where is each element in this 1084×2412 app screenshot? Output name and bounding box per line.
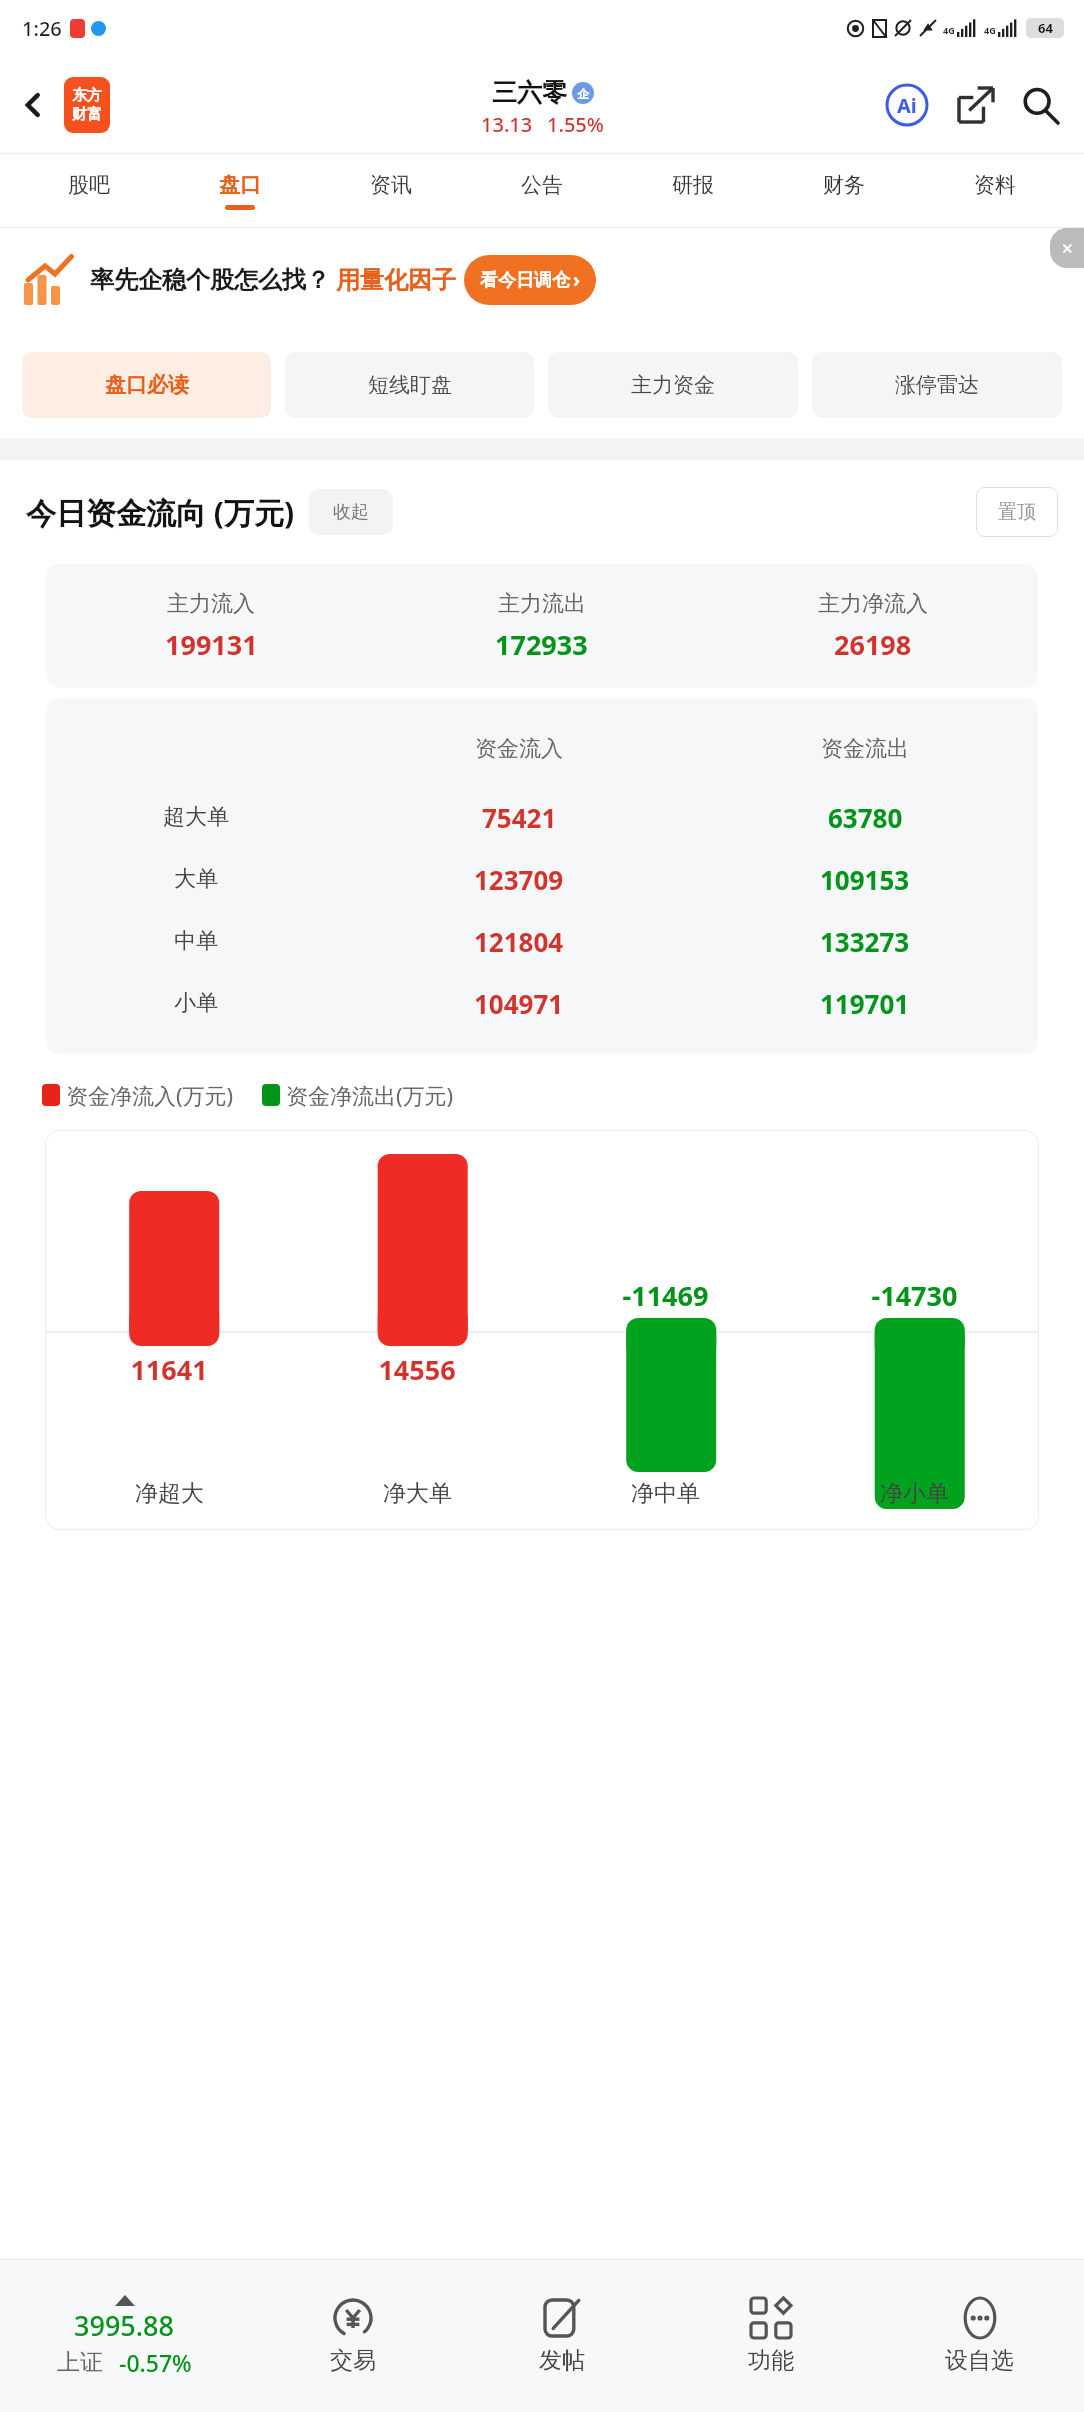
staticText: 功能 <box>748 2346 794 2375</box>
staticText: 4G <box>943 24 955 36</box>
button[interactable]: 主力资金 <box>548 352 798 418</box>
button[interactable]: Search <box>1018 83 1062 127</box>
staticText: 主力流出 <box>498 590 586 618</box>
staticText: 主力净流入 <box>818 590 928 618</box>
staticText: 资料 <box>974 172 1016 198</box>
staticText: 收起 <box>333 501 369 524</box>
button[interactable]: 股吧 <box>14 154 164 228</box>
staticText: 14556 <box>293 1351 541 1388</box>
button[interactable]: East Money <box>64 77 110 133</box>
staticText: 大单 <box>174 865 218 893</box>
button[interactable]: 设自选 <box>875 2260 1084 2412</box>
staticText: 超大单 <box>163 803 229 831</box>
button[interactable]: 盘口必读 <box>22 352 271 418</box>
staticText: -11469 <box>541 1277 790 1314</box>
button[interactable]: 财务 <box>768 154 919 228</box>
button[interactable]: 资料 <box>919 154 1070 228</box>
staticText: 资金净流出(万元) <box>286 1080 454 1110</box>
staticText: 1:26 <box>22 15 62 42</box>
staticText: 研报 <box>672 172 714 198</box>
button[interactable]: Close ad <box>1050 228 1084 268</box>
staticText: 11641 <box>45 1351 293 1388</box>
staticText: 123709 <box>474 862 564 897</box>
staticText: 看今日调仓 <box>480 269 570 292</box>
staticText: 64 <box>1038 19 1053 37</box>
staticText: 财务 <box>823 172 865 198</box>
button[interactable]: 资讯 <box>315 154 466 228</box>
staticText: 设自选 <box>945 2346 1014 2375</box>
staticText: 中单 <box>174 927 218 955</box>
staticText: -0.57% <box>119 2347 192 2378</box>
button[interactable]: 看今日调仓 <box>480 255 580 305</box>
button[interactable]: 收起 <box>309 489 393 535</box>
staticText: 置顶 <box>998 500 1036 524</box>
staticText: 净中单 <box>631 1479 700 1508</box>
staticText: 资金流出 <box>821 735 909 763</box>
staticText: 用量化因子 <box>336 265 456 295</box>
staticText: 26198 <box>834 626 912 663</box>
button[interactable]: 公告 <box>466 154 617 228</box>
staticText: 1.55% <box>547 111 604 138</box>
button[interactable]: 短线盯盘 <box>285 352 534 418</box>
button[interactable]: 率先企稳个股怎么找？ <box>24 228 1070 332</box>
staticText: 盘口 <box>219 172 261 198</box>
button[interactable]: 研报 <box>617 154 768 228</box>
staticText: 199131 <box>165 626 258 663</box>
staticText: 交易 <box>330 2346 376 2375</box>
staticText: 109153 <box>820 862 910 897</box>
button[interactable]: 3995.88 <box>0 2260 248 2412</box>
staticText: 率先企稳个股怎么找？ <box>90 265 330 295</box>
staticText: 63780 <box>828 800 903 835</box>
staticText: 净小单 <box>880 1479 949 1508</box>
staticText: 短线盯盘 <box>368 372 452 398</box>
staticText: 3995.88 <box>74 2307 175 2344</box>
staticText: 133273 <box>820 924 910 959</box>
staticText: 股吧 <box>68 172 110 198</box>
staticText: 75421 <box>482 800 557 835</box>
staticText: -14730 <box>790 1277 1039 1314</box>
button[interactable]: 涨停雷达 <box>812 352 1062 418</box>
staticText: 企 <box>577 86 589 101</box>
staticText: 公告 <box>521 172 563 198</box>
staticText: 盘口必读 <box>105 372 189 398</box>
staticText: ✕ <box>1061 240 1074 257</box>
staticText: 净超大 <box>135 1479 204 1508</box>
staticText: 上证 <box>57 2348 103 2377</box>
button[interactable]: 功能 <box>666 2260 875 2412</box>
button[interactable]: 置顶 <box>976 487 1058 537</box>
staticText: 13.13 <box>481 111 533 138</box>
staticText: 主力流入 <box>167 590 255 618</box>
button[interactable]: 发帖 <box>457 2260 666 2412</box>
staticText: 涨停雷达 <box>895 372 979 398</box>
staticText: › <box>573 267 580 293</box>
staticText: 119701 <box>820 986 910 1021</box>
staticText: 资讯 <box>370 172 412 198</box>
staticText: 4G <box>984 24 996 36</box>
staticText: 财富 <box>72 105 102 124</box>
button[interactable]: 盘口 <box>164 154 315 228</box>
staticText: 发帖 <box>539 2346 585 2375</box>
staticText: Ai <box>897 92 917 119</box>
button[interactable]: AI assistant <box>884 82 930 128</box>
staticText: 121804 <box>474 924 564 959</box>
button[interactable]: Share <box>954 83 998 127</box>
button[interactable]: Back <box>14 86 52 124</box>
staticText: 三六零 <box>492 77 567 108</box>
staticText: 小单 <box>174 989 218 1017</box>
staticText: 172933 <box>495 626 588 663</box>
staticText: 净大单 <box>383 1479 452 1508</box>
staticText: 主力资金 <box>631 372 715 398</box>
staticText: 东方 <box>72 86 102 105</box>
staticText: 资金流入 <box>475 735 563 763</box>
button[interactable]: 交易 <box>248 2260 457 2412</box>
staticText: 今日资金流向 (万元) <box>26 492 295 533</box>
staticText: 资金净流入(万元) <box>66 1080 234 1110</box>
staticText: 104971 <box>474 986 564 1021</box>
